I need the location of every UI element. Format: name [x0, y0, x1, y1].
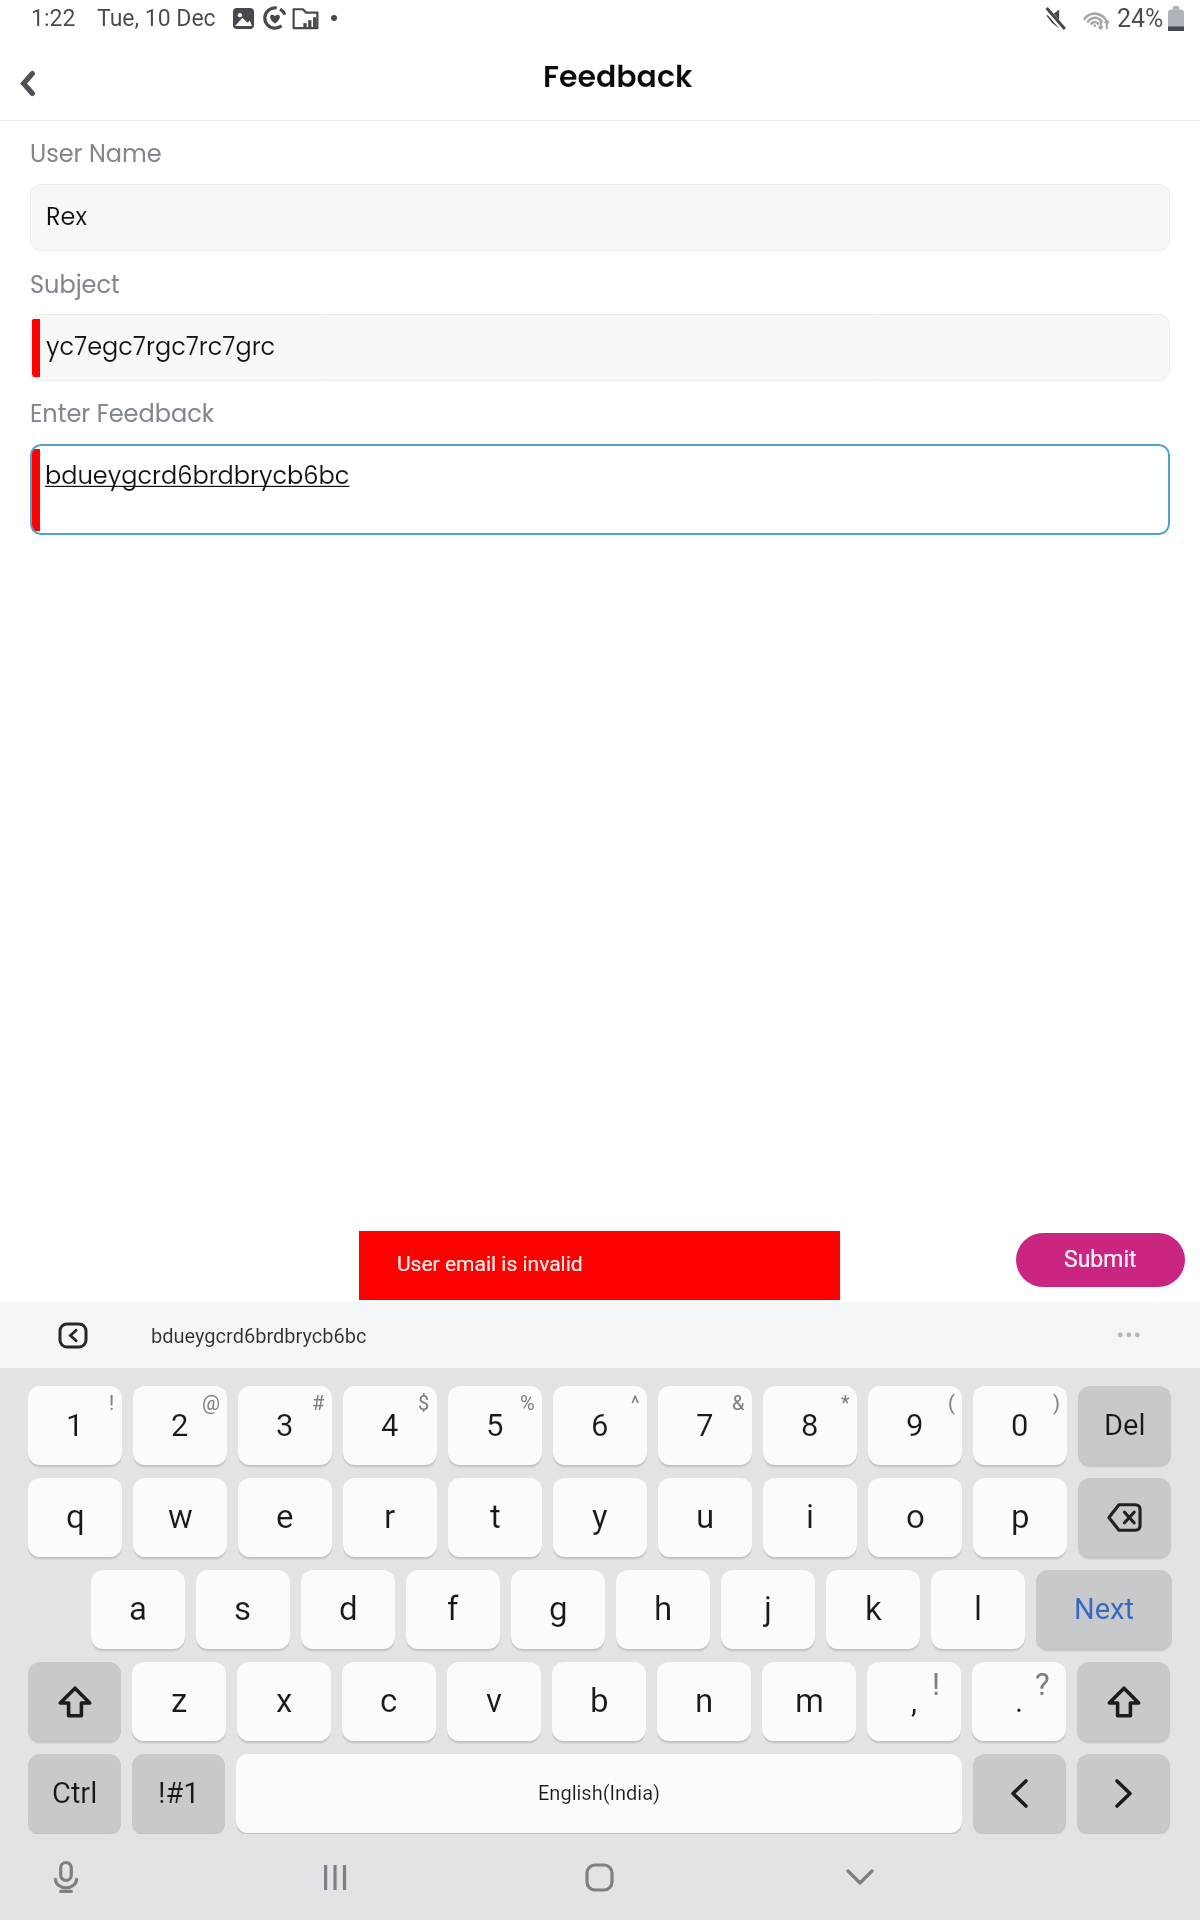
staticText: g	[549, 1589, 568, 1628]
button[interactable]: w	[133, 1478, 227, 1557]
button[interactable]: o	[868, 1478, 962, 1557]
button[interactable]: Voice input	[34, 1840, 98, 1914]
staticText: Tue, 10 Dec	[97, 5, 216, 32]
button[interactable]: Previous suggestion	[60, 1324, 86, 1347]
button[interactable]: bdueygcrd6brdbrycb6bc	[30, 444, 1170, 535]
staticText: v	[486, 1681, 502, 1720]
staticText: 1	[66, 1407, 84, 1443]
button[interactable]: 1	[28, 1386, 122, 1465]
button[interactable]	[973, 1754, 1066, 1833]
staticText: 4	[381, 1407, 399, 1443]
staticText: 8	[801, 1407, 819, 1443]
staticText: l	[974, 1589, 983, 1628]
staticText: *	[841, 1391, 850, 1414]
button[interactable]: c	[342, 1662, 436, 1741]
button[interactable]: q	[28, 1478, 122, 1557]
button[interactable]: .	[972, 1662, 1066, 1741]
button[interactable]: t	[448, 1478, 542, 1557]
button[interactable]: Home	[567, 1840, 631, 1914]
staticText: @	[202, 1391, 220, 1414]
staticText: 0	[1011, 1407, 1029, 1443]
button[interactable]: Rex	[30, 184, 1170, 251]
staticText: y	[592, 1497, 608, 1536]
button[interactable]: y	[553, 1478, 647, 1557]
button[interactable]	[28, 1662, 121, 1741]
staticText: w	[168, 1497, 193, 1536]
button[interactable]: 5	[448, 1386, 542, 1465]
button[interactable]: n	[657, 1662, 751, 1741]
button[interactable]: English(India)	[236, 1754, 962, 1833]
button[interactable]: j	[721, 1570, 815, 1649]
button[interactable]: Submit	[1016, 1233, 1185, 1287]
staticText: Del	[1104, 1408, 1146, 1442]
button[interactable]: l	[931, 1570, 1025, 1649]
button[interactable]: d	[301, 1570, 395, 1649]
button[interactable]: h	[616, 1570, 710, 1649]
button[interactable]: m	[762, 1662, 856, 1741]
staticText: n	[695, 1681, 714, 1720]
button[interactable]: v	[447, 1662, 541, 1741]
staticText: 6	[591, 1407, 609, 1443]
button[interactable]: u	[658, 1478, 752, 1557]
button[interactable]: b	[552, 1662, 646, 1741]
button[interactable]: yc7egc7rgc7rc7grc	[30, 314, 1170, 381]
button[interactable]: 9	[868, 1386, 962, 1465]
button[interactable]: 3	[238, 1386, 332, 1465]
button[interactable]: 6	[553, 1386, 647, 1465]
button[interactable]: Next	[1036, 1570, 1172, 1649]
button[interactable]: 0	[973, 1386, 1067, 1465]
staticText: bdueygcrd6brdbrycb6bc	[45, 459, 350, 493]
staticText: User Name	[30, 137, 162, 171]
staticText: e	[276, 1497, 294, 1536]
button[interactable]: 8	[763, 1386, 857, 1465]
button[interactable]	[1077, 1662, 1170, 1741]
button[interactable]: s	[196, 1570, 290, 1649]
staticText: bdueygcrd6brdbrycb6bc	[151, 1324, 367, 1347]
staticText: #	[312, 1391, 325, 1414]
staticText: Enter Feedback	[30, 397, 215, 431]
button[interactable]: !#1	[132, 1754, 225, 1833]
staticText: Next	[1074, 1592, 1134, 1626]
button[interactable]: Back	[0, 48, 63, 118]
button[interactable]: 2	[133, 1386, 227, 1465]
staticText: 9	[906, 1407, 924, 1443]
staticText: j	[764, 1589, 772, 1628]
button[interactable]: Del	[1078, 1386, 1171, 1465]
staticText: Submit	[1064, 1246, 1137, 1273]
staticText: 5	[486, 1407, 504, 1443]
button[interactable]: Hide keyboard	[828, 1840, 892, 1914]
button[interactable]	[1078, 1478, 1171, 1557]
button[interactable]: User email is invalid	[359, 1231, 840, 1300]
staticText: a	[129, 1589, 147, 1628]
button[interactable]	[1077, 1754, 1170, 1833]
staticText: s	[234, 1589, 252, 1628]
button[interactable]: x	[237, 1662, 331, 1741]
button[interactable]: r	[343, 1478, 437, 1557]
staticText: c	[380, 1681, 398, 1720]
staticText: yc7egc7rgc7rc7grc	[46, 330, 276, 364]
staticText: 24%	[1117, 4, 1164, 33]
button[interactable]: k	[826, 1570, 920, 1649]
staticText: English(India)	[538, 1781, 661, 1804]
button[interactable]: a	[91, 1570, 185, 1649]
button[interactable]: 7	[658, 1386, 752, 1465]
button[interactable]: Recents	[303, 1840, 367, 1914]
staticText: Ctrl	[52, 1776, 98, 1810]
staticText: ?	[1035, 1666, 1050, 1702]
staticText: )	[1053, 1391, 1060, 1414]
button[interactable]: g	[511, 1570, 605, 1649]
staticText: User email is invalid	[397, 1252, 583, 1277]
button[interactable]: p	[973, 1478, 1067, 1557]
button[interactable]: 4	[343, 1386, 437, 1465]
button[interactable]: ,	[867, 1662, 961, 1741]
button[interactable]: f	[406, 1570, 500, 1649]
button[interactable]: e	[238, 1478, 332, 1557]
staticText: ,	[911, 1683, 918, 1719]
staticText: q	[66, 1497, 85, 1536]
staticText: z	[171, 1681, 188, 1720]
button[interactable]: i	[763, 1478, 857, 1557]
button[interactable]: z	[132, 1662, 226, 1741]
staticText: %	[520, 1391, 535, 1414]
staticText: t	[490, 1497, 501, 1536]
button[interactable]: Ctrl	[28, 1754, 121, 1833]
